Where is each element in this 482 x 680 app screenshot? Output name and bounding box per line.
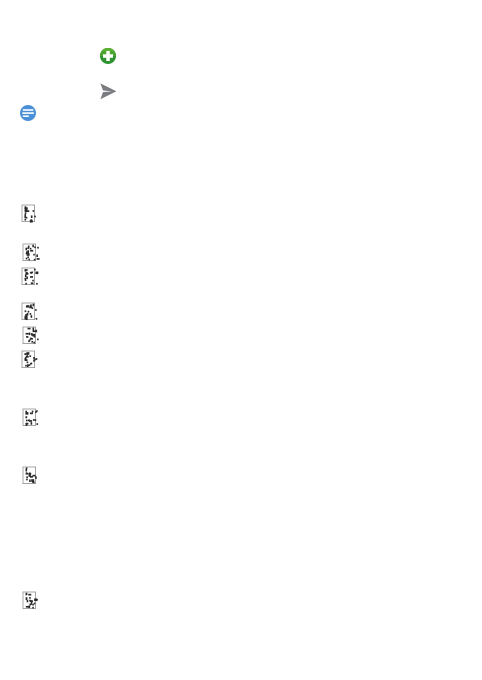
button[interactable]: Add bbox=[100, 48, 116, 64]
button[interactable]: Send bbox=[100, 83, 117, 100]
button[interactable]: Summary bbox=[20, 105, 36, 121]
staticText: Tap the button to add a new entry, then bbox=[20, 96, 371, 121]
staticText: Here is what I put together for you. bbox=[20, 50, 333, 75]
